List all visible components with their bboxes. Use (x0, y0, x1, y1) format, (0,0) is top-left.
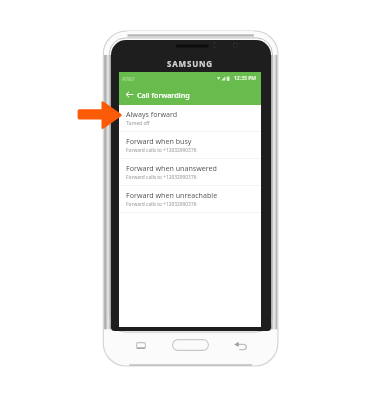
button[interactable]: Back (124, 89, 135, 100)
staticText: Forward when unanswered (126, 163, 217, 173)
staticText: Turned off (126, 120, 150, 127)
button[interactable]: Back (234, 341, 247, 350)
staticText: Always forward (126, 109, 178, 119)
staticText: SAMSUNG (0, 58, 380, 69)
other: Pointer arrow (0, 0, 380, 400)
staticText: 12:35 PM (234, 75, 256, 82)
button[interactable]: Recent apps (136, 342, 146, 349)
button[interactable]: Forward when unanswered (119, 159, 261, 186)
button[interactable]: Forward when unreachable (119, 186, 261, 213)
staticText: Forward when busy (126, 136, 192, 146)
button[interactable]: Forward when busy (119, 132, 261, 159)
staticText: Forward calls to +12032990376 (126, 201, 197, 208)
staticText: Call forwarding (137, 90, 190, 100)
staticText: AT&T (122, 75, 135, 82)
button[interactable]: Home (172, 339, 209, 351)
staticText: Forward calls to +12032990376 (126, 147, 197, 154)
staticText: Forward calls to +12032990376 (126, 174, 197, 181)
staticText: Forward when unreachable (126, 190, 218, 200)
button[interactable]: Always forward (119, 105, 261, 132)
